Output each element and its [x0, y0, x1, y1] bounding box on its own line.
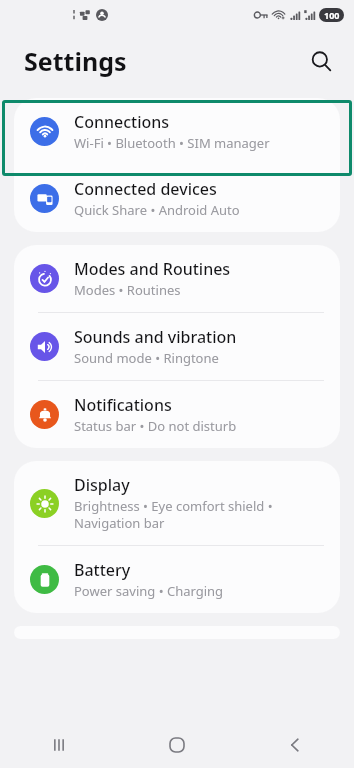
staticText: Connections	[74, 111, 170, 133]
button[interactable]: Sounds and vibration	[14, 313, 340, 380]
button[interactable]: Search	[300, 40, 342, 82]
staticText: Sounds and vibration	[74, 326, 237, 348]
button[interactable]: Connections	[14, 98, 340, 165]
staticText: Modes • Routines	[74, 281, 181, 299]
staticText: Quick Share • Android Auto	[74, 201, 240, 219]
button[interactable]: Home	[151, 722, 203, 768]
staticText: Notifications	[74, 394, 172, 416]
staticText: Settings	[24, 44, 127, 78]
staticText: Modes and Routines	[74, 258, 231, 280]
staticText: Battery	[74, 559, 131, 581]
staticText: Power saving • Charging	[74, 582, 224, 600]
button[interactable]: Recent apps	[33, 722, 85, 768]
button[interactable]: Notifications	[14, 381, 340, 448]
staticText: Connected devices	[74, 178, 217, 200]
staticText: Sound mode • Ringtone	[74, 349, 219, 367]
button[interactable]: Connected devices	[14, 165, 340, 232]
button[interactable]: Modes and Routines	[14, 245, 340, 312]
button[interactable]: Battery	[14, 546, 340, 613]
staticText: 100	[324, 9, 340, 21]
staticText: Brightness • Eye comfort shield • Naviga…	[74, 497, 326, 532]
button[interactable]: Display	[14, 461, 340, 545]
staticText: Wi-Fi • Bluetooth • SIM manager	[74, 134, 270, 152]
staticText: Display	[74, 474, 130, 496]
staticText: Status bar • Do not disturb	[74, 417, 237, 435]
button[interactable]: Back	[269, 722, 321, 768]
